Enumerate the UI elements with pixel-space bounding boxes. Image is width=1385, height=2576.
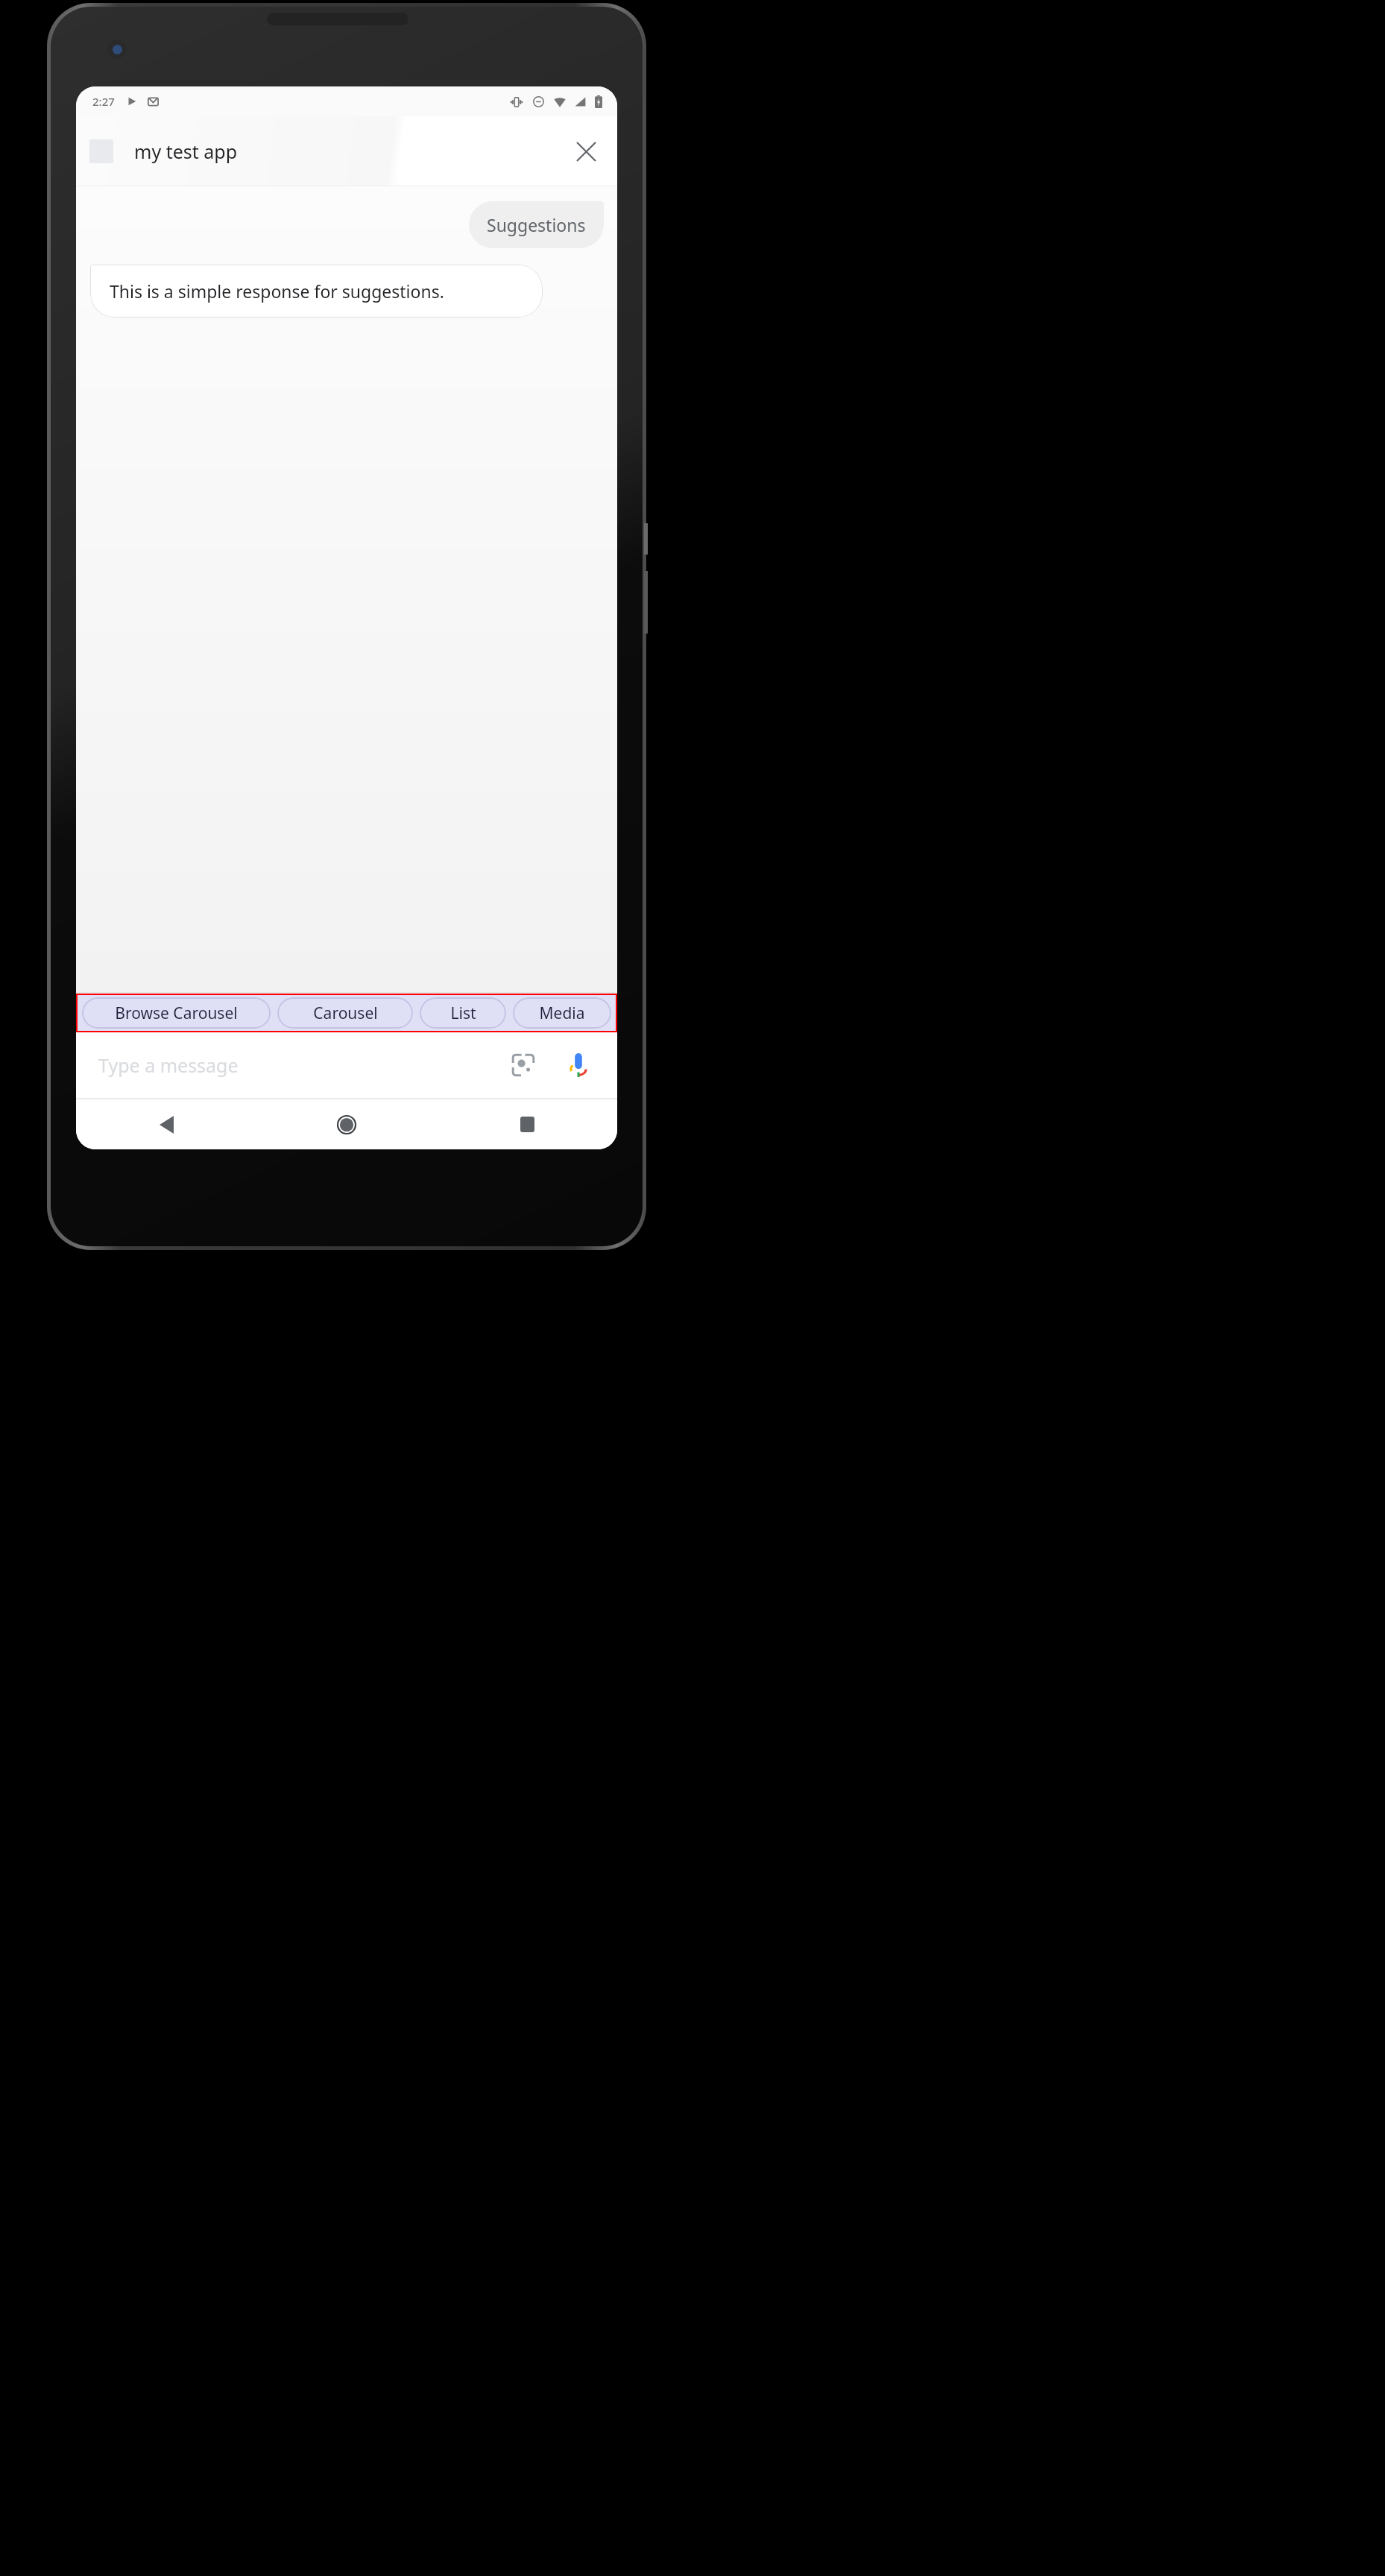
button[interactable]: This is a simple response for suggestion… xyxy=(90,265,543,318)
button[interactable]: List xyxy=(420,997,506,1029)
staticText: Type a message xyxy=(98,1052,239,1078)
button[interactable]: Voice input xyxy=(561,1047,596,1083)
button[interactable]: App icon xyxy=(89,139,113,163)
button[interactable]: Home xyxy=(256,1099,437,1149)
staticText: Carousel xyxy=(313,1003,378,1024)
button[interactable]: Media xyxy=(513,997,611,1029)
staticText: List xyxy=(450,1003,476,1024)
staticText: This is a simple response for suggestion… xyxy=(110,280,444,303)
staticText: Media xyxy=(539,1003,585,1024)
button[interactable]: Recent apps xyxy=(437,1099,617,1149)
button[interactable]: Carousel xyxy=(277,997,413,1029)
button[interactable]: Close xyxy=(568,133,604,169)
staticText: Suggestions xyxy=(487,213,586,236)
staticText: Browse Carousel xyxy=(115,1003,238,1024)
button[interactable]: Back xyxy=(76,1099,256,1149)
button[interactable]: Google Lens xyxy=(505,1047,541,1083)
button[interactable]: Suggestions xyxy=(469,201,604,248)
staticText: my test app xyxy=(134,139,238,164)
button[interactable]: Browse Carousel xyxy=(82,997,271,1029)
staticText: 2:27 xyxy=(92,94,115,109)
